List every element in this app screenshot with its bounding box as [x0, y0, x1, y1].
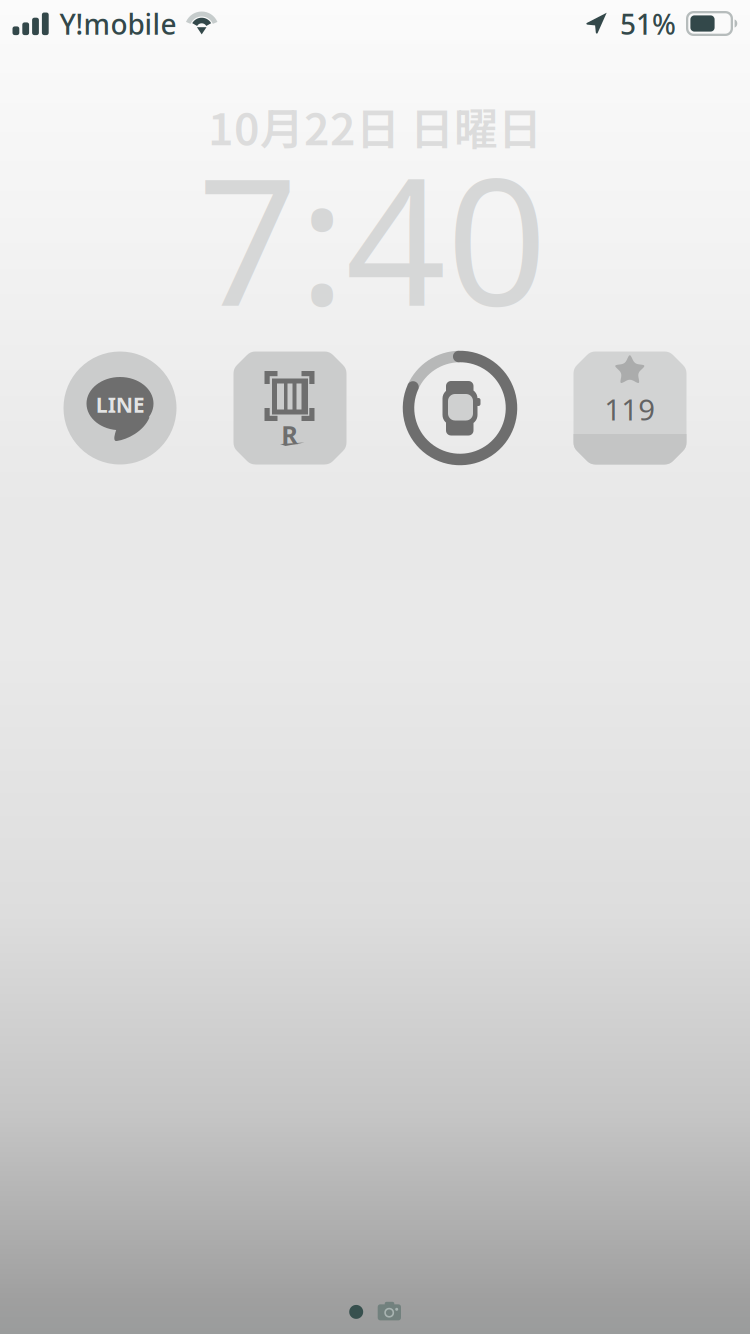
- button[interactable]: Watch: [403, 351, 516, 464]
- staticText: 119: [604, 389, 655, 428]
- button[interactable]: 119: [573, 351, 686, 464]
- staticText: R: [281, 418, 298, 451]
- staticText: 7:40: [197, 120, 547, 354]
- button[interactable]: LINE: [63, 351, 176, 464]
- staticText: 51%: [620, 5, 676, 43]
- staticText: LINE: [96, 390, 145, 419]
- staticText: 10月22日 日曜日: [208, 94, 542, 158]
- staticText: Y!mobile: [59, 5, 176, 43]
- button[interactable]: Camera: [378, 1301, 402, 1321]
- button[interactable]: R: [233, 351, 346, 464]
